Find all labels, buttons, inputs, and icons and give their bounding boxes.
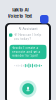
staticText: Hi! How can I help (14, 33, 42, 37)
staticText: reminder for 5pm? (11, 54, 37, 58)
staticText: How do I create a (11, 46, 38, 50)
staticText: Voice to Text (7, 14, 32, 19)
staticText: AI Assistant (18, 27, 37, 31)
staticText: you today? (14, 37, 31, 41)
staticText: Talk to AI (11, 7, 28, 12)
staticText: new note and set a (11, 50, 40, 54)
